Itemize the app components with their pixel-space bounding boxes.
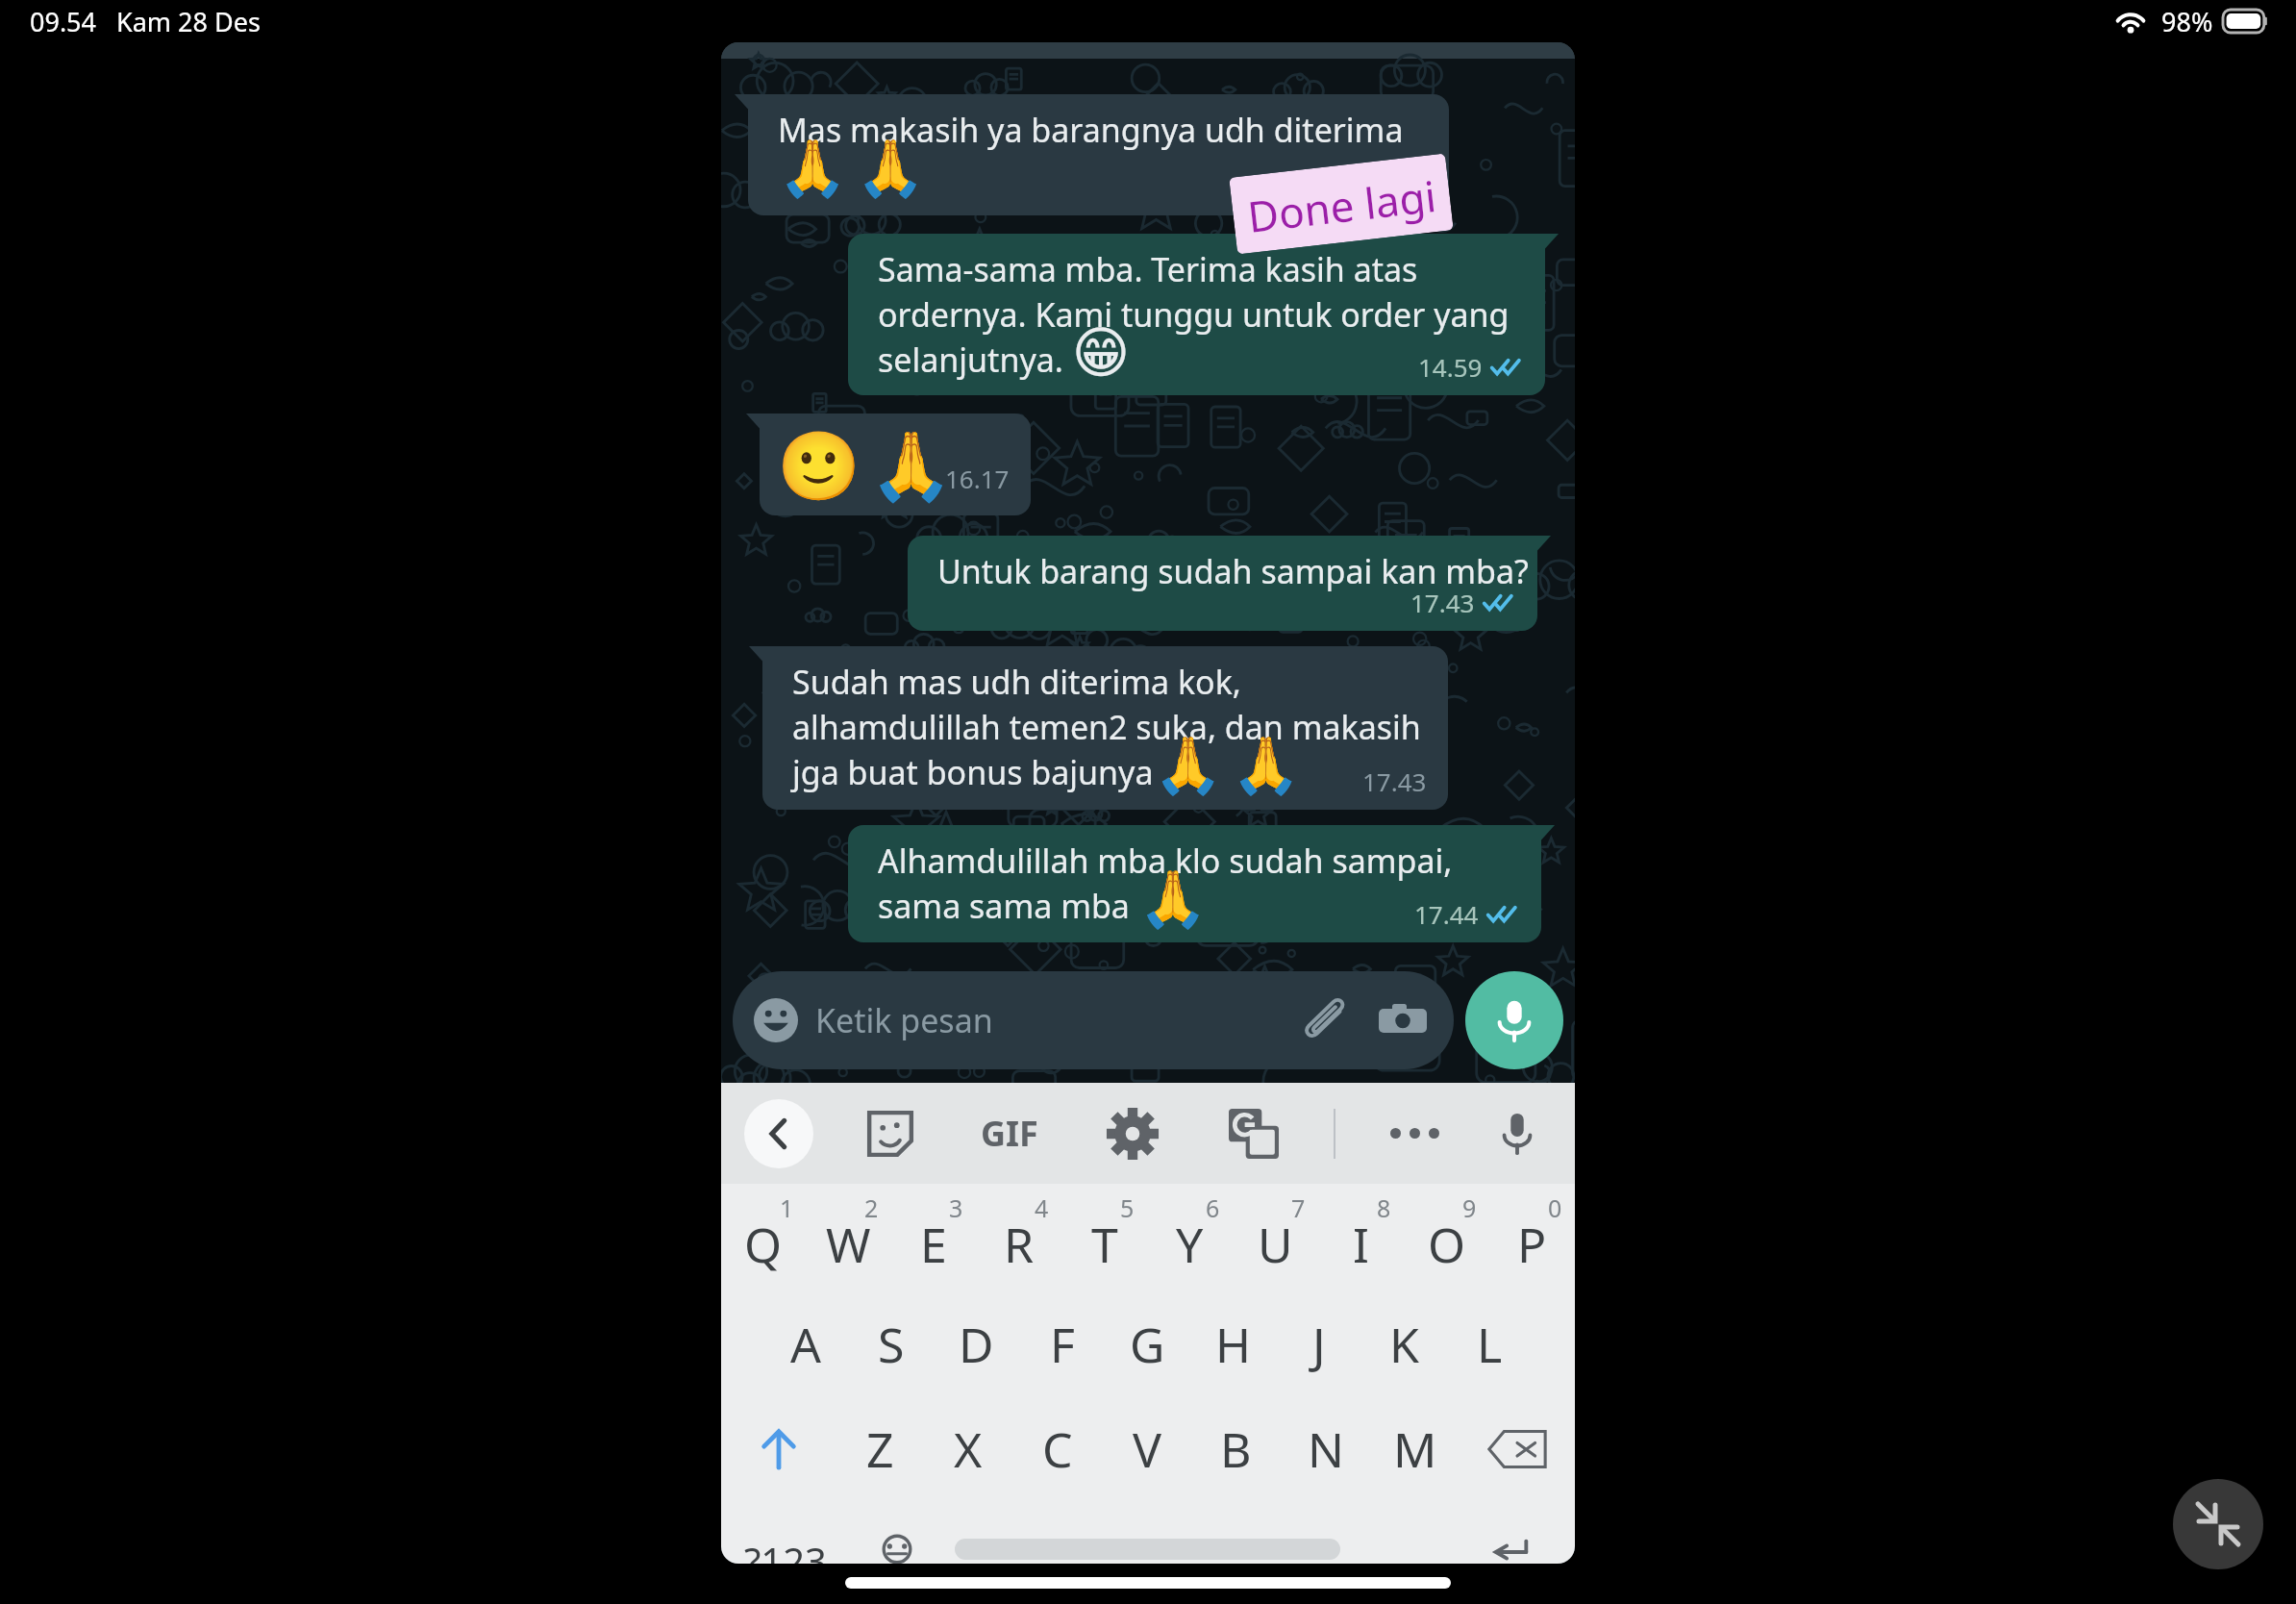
- staticText: Sudah mas udh diterima kok, alhamdulilla…: [792, 660, 1421, 798]
- staticText: V: [1133, 1416, 1161, 1482]
- button[interactable]: Mas makasih ya barangnya udh diterima 🙏 …: [748, 94, 1449, 215]
- staticText: 14.59: [1418, 350, 1483, 384]
- button[interactable]: 🙂 🙏: [760, 414, 1031, 515]
- button[interactable]: Untuk barang sudah sampai kan mba?: [908, 536, 1537, 631]
- staticText: Sama-sama mba. Terima kasih atas orderny…: [878, 247, 1510, 386]
- staticText: Q: [744, 1212, 783, 1277]
- staticText: 3: [949, 1191, 963, 1224]
- staticText: O: [1428, 1212, 1466, 1277]
- button[interactable]: S: [848, 1291, 934, 1397]
- staticText: 17.43: [1362, 764, 1427, 798]
- button[interactable]: Alhamdulillah mba klo sudah sampai, sama…: [848, 825, 1541, 942]
- button[interactable]: D: [934, 1291, 1019, 1397]
- staticText: R: [1004, 1212, 1035, 1277]
- button[interactable]: 9: [1404, 1186, 1489, 1291]
- staticText: 17.43: [1410, 586, 1475, 619]
- button[interactable]: Z: [836, 1397, 924, 1500]
- button[interactable]: F: [1019, 1291, 1105, 1397]
- staticText: J: [1312, 1312, 1326, 1377]
- button[interactable]: Emoji keyboard: [850, 1535, 943, 1564]
- staticText: Ketik pesan: [815, 998, 993, 1042]
- button[interactable]: L: [1447, 1291, 1533, 1397]
- staticText: 6: [1206, 1191, 1220, 1224]
- button[interactable]: Enter: [1445, 1535, 1575, 1564]
- staticText: Alhamdulillah mba klo sudah sampai, sama…: [878, 839, 1453, 932]
- button[interactable]: A: [763, 1291, 848, 1397]
- button[interactable]: Attach: [1302, 998, 1346, 1042]
- button[interactable]: 4: [976, 1186, 1061, 1291]
- button[interactable]: G: [1105, 1291, 1190, 1397]
- button[interactable]: Sama-sama mba. Terima kasih atas orderny…: [848, 234, 1545, 395]
- staticText: L: [1477, 1312, 1503, 1377]
- staticText: Kam 28 Des: [116, 4, 261, 39]
- staticText: F: [1050, 1312, 1075, 1377]
- staticText: GIF: [981, 1110, 1038, 1157]
- staticText: 0: [1548, 1191, 1562, 1224]
- button[interactable]: 3: [890, 1186, 976, 1291]
- staticText: K: [1389, 1312, 1419, 1377]
- button[interactable]: V: [1102, 1397, 1191, 1500]
- button[interactable]: 6: [1147, 1186, 1233, 1291]
- staticText: Untuk barang sudah sampai kan mba?: [937, 549, 1529, 593]
- staticText: 09.54: [30, 4, 97, 39]
- staticText: P: [1517, 1212, 1547, 1277]
- button[interactable]: N: [1281, 1397, 1370, 1500]
- button[interactable]: Translate: [1229, 1109, 1279, 1159]
- button[interactable]: 0: [1489, 1186, 1575, 1291]
- button[interactable]: Voice message: [1465, 971, 1563, 1069]
- button[interactable]: Sudah mas udh diterima kok, alhamdulilla…: [762, 646, 1448, 810]
- staticText: W: [826, 1212, 871, 1277]
- button[interactable]: ?123: [721, 1535, 850, 1564]
- button[interactable]: Emoji: [754, 998, 798, 1042]
- button[interactable]: M: [1370, 1397, 1460, 1500]
- button[interactable]: 1: [721, 1186, 806, 1291]
- staticText: X: [954, 1416, 983, 1482]
- button[interactable]: 7: [1233, 1186, 1318, 1291]
- staticText: T: [1091, 1212, 1118, 1277]
- staticText: Mas makasih ya barangnya udh diterima 🙏 …: [778, 108, 1404, 201]
- button[interactable]: X: [924, 1397, 1012, 1500]
- button[interactable]: 5: [1061, 1186, 1147, 1291]
- staticText: M: [1393, 1416, 1437, 1482]
- staticText: B: [1220, 1416, 1252, 1482]
- button[interactable]: C: [1012, 1397, 1102, 1500]
- staticText: 🙂 🙏: [777, 427, 954, 506]
- button[interactable]: Camera: [1379, 996, 1427, 1044]
- staticText: 5: [1120, 1191, 1135, 1224]
- staticText: I: [1353, 1212, 1369, 1277]
- staticText: N: [1308, 1416, 1344, 1482]
- staticText: S: [878, 1312, 905, 1377]
- button[interactable]: Voice input: [1494, 1111, 1540, 1157]
- button[interactable]: 8: [1318, 1186, 1404, 1291]
- button[interactable]: GIF: [981, 1110, 1038, 1157]
- staticText: 9: [1462, 1191, 1477, 1224]
- button[interactable]: B: [1191, 1397, 1281, 1500]
- button[interactable]: H: [1190, 1291, 1276, 1397]
- staticText: Y: [1176, 1212, 1204, 1277]
- staticText: D: [959, 1312, 994, 1377]
- button[interactable]: Stickers: [865, 1109, 915, 1159]
- staticText: 98%: [2161, 4, 2213, 39]
- button[interactable]: 2: [806, 1186, 890, 1291]
- button[interactable]: Back: [744, 1099, 813, 1168]
- button[interactable]: Settings: [1108, 1109, 1158, 1159]
- button[interactable]: More options: [1390, 1128, 1439, 1139]
- button[interactable]: K: [1361, 1291, 1447, 1397]
- staticText: Done lagi: [1245, 166, 1439, 245]
- button[interactable]: Backspace: [1460, 1397, 1575, 1500]
- staticText: 7: [1291, 1191, 1306, 1224]
- staticText: ?123: [744, 1535, 827, 1564]
- staticText: 8: [1377, 1191, 1391, 1224]
- staticText: 17.44: [1414, 897, 1479, 931]
- button[interactable]: Collapse window: [2173, 1479, 2263, 1569]
- button[interactable]: Emoji: [733, 971, 1454, 1069]
- staticText: 4: [1035, 1191, 1049, 1224]
- staticText: 2: [864, 1191, 879, 1224]
- button[interactable]: Shift: [721, 1397, 836, 1500]
- staticText: 1: [780, 1191, 794, 1224]
- button[interactable]: J: [1276, 1291, 1361, 1397]
- staticText: H: [1215, 1312, 1252, 1377]
- staticText: C: [1042, 1416, 1073, 1482]
